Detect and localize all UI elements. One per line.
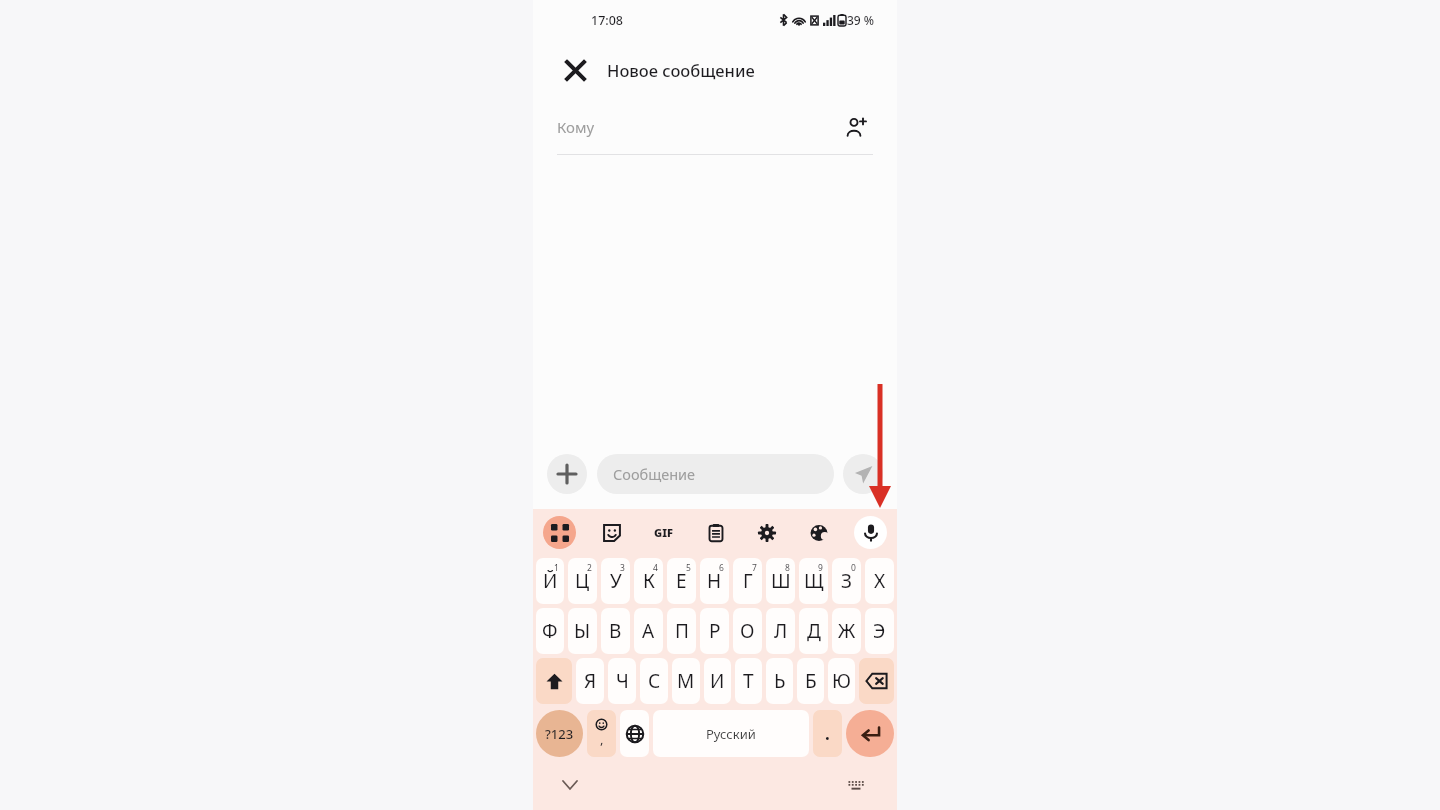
staticText: П bbox=[675, 618, 689, 644]
staticText: Щ bbox=[804, 568, 824, 594]
staticText: Г bbox=[743, 568, 753, 594]
button[interactable]: Hide keyboard bbox=[555, 770, 585, 800]
button[interactable]: Ь bbox=[766, 658, 793, 704]
staticText: 17:08 bbox=[591, 12, 624, 29]
staticText: Ы bbox=[574, 618, 591, 644]
button[interactable]: Ч bbox=[608, 658, 636, 704]
button[interactable]: Add recipient bbox=[839, 110, 873, 144]
button[interactable]: Русский bbox=[653, 710, 809, 757]
button[interactable]: К bbox=[634, 558, 663, 604]
button[interactable]: Attach bbox=[547, 454, 587, 494]
button[interactable]: Shift bbox=[536, 658, 572, 704]
staticText: З bbox=[841, 568, 852, 594]
staticText: 6 bbox=[719, 562, 724, 574]
staticText: . bbox=[825, 722, 830, 745]
button[interactable]: ?123 bbox=[536, 710, 583, 757]
staticText: Ш bbox=[771, 568, 791, 594]
staticText: О bbox=[740, 618, 755, 644]
button[interactable]: Settings bbox=[750, 516, 783, 549]
button[interactable]: Я bbox=[576, 658, 604, 704]
staticText: Ч bbox=[616, 668, 629, 694]
staticText: Н bbox=[707, 568, 722, 594]
button[interactable]: Ц bbox=[568, 558, 597, 604]
button[interactable]: Voice input bbox=[854, 516, 887, 549]
staticText: 4 bbox=[653, 562, 658, 574]
staticText: GIF bbox=[654, 525, 673, 540]
button[interactable]: И bbox=[704, 658, 731, 704]
button[interactable]: Themes bbox=[802, 516, 835, 549]
staticText: 5 bbox=[686, 562, 691, 574]
staticText: Ь bbox=[774, 668, 786, 694]
staticText: Е bbox=[676, 568, 687, 594]
button[interactable]: . bbox=[813, 710, 842, 757]
staticText: Р bbox=[709, 618, 721, 644]
button[interactable]: GIF bbox=[647, 516, 680, 549]
staticText: Кому bbox=[557, 117, 839, 137]
button[interactable]: У bbox=[601, 558, 630, 604]
button[interactable]: Л bbox=[766, 608, 795, 654]
button[interactable]: П bbox=[667, 608, 696, 654]
button[interactable]: О bbox=[733, 608, 762, 654]
staticText: К bbox=[643, 568, 655, 594]
button[interactable]: Э bbox=[865, 608, 894, 654]
staticText: А bbox=[642, 618, 655, 644]
button[interactable]: Ы bbox=[568, 608, 597, 654]
button[interactable]: Р bbox=[700, 608, 729, 654]
button[interactable]: Ж bbox=[832, 608, 861, 654]
button[interactable]: Т bbox=[735, 658, 762, 704]
button[interactable]: Ш bbox=[766, 558, 795, 604]
button[interactable]: Й bbox=[536, 558, 564, 604]
staticText: , bbox=[600, 730, 604, 748]
staticText: 39 % bbox=[847, 12, 875, 28]
button[interactable]: Send bbox=[843, 454, 883, 494]
button[interactable]: Е bbox=[667, 558, 696, 604]
staticText: 0 bbox=[851, 562, 856, 574]
staticText: Ю bbox=[832, 668, 851, 694]
button[interactable]: Ф bbox=[536, 608, 564, 654]
staticText: Д bbox=[807, 618, 821, 644]
staticText: Ц bbox=[575, 568, 590, 594]
staticText: Сообщение bbox=[613, 464, 696, 484]
staticText: Б bbox=[805, 668, 817, 694]
button[interactable]: Stickers bbox=[595, 516, 628, 549]
staticText: Л bbox=[774, 618, 788, 644]
staticText: В bbox=[609, 618, 622, 644]
button[interactable]: А bbox=[634, 608, 663, 654]
button[interactable]: Кому bbox=[557, 100, 873, 154]
staticText: У bbox=[610, 568, 622, 594]
button[interactable]: Х bbox=[865, 558, 894, 604]
staticText: Ф bbox=[542, 618, 558, 644]
staticText: С bbox=[648, 668, 661, 694]
staticText: 7 bbox=[752, 562, 757, 574]
button[interactable]: Н bbox=[700, 558, 729, 604]
button[interactable]: Backspace bbox=[859, 658, 894, 704]
staticText: И bbox=[710, 668, 725, 694]
button[interactable]: Switch keyboard bbox=[841, 770, 871, 800]
button[interactable]: Keyboard modes bbox=[543, 516, 576, 549]
button[interactable]: Change language bbox=[620, 710, 649, 757]
button[interactable]: Ю bbox=[828, 658, 855, 704]
staticText: М bbox=[677, 668, 695, 694]
button[interactable]: Д bbox=[799, 608, 828, 654]
button[interactable]: М bbox=[672, 658, 700, 704]
staticText: Э bbox=[873, 618, 886, 644]
staticText: 1 bbox=[554, 562, 559, 574]
button[interactable]: Щ bbox=[799, 558, 828, 604]
button[interactable]: В bbox=[601, 608, 630, 654]
button[interactable]: Enter bbox=[846, 710, 894, 757]
button[interactable]: С bbox=[640, 658, 668, 704]
staticText: Новое сообщение bbox=[607, 59, 755, 81]
button[interactable]: Б bbox=[797, 658, 824, 704]
staticText: Т bbox=[743, 668, 754, 694]
staticText: Х bbox=[874, 568, 886, 594]
staticText: Я bbox=[584, 668, 597, 694]
staticText: ?123 bbox=[545, 725, 574, 743]
button[interactable]: Г bbox=[733, 558, 762, 604]
button[interactable]: Close bbox=[555, 50, 595, 90]
button[interactable]: Сообщение bbox=[597, 454, 834, 494]
staticText: 3 bbox=[620, 562, 625, 574]
staticText: Й bbox=[543, 568, 558, 594]
button[interactable]: Clipboard bbox=[699, 516, 732, 549]
button[interactable]: З bbox=[832, 558, 861, 604]
button[interactable]: Emoji and comma bbox=[587, 710, 616, 757]
